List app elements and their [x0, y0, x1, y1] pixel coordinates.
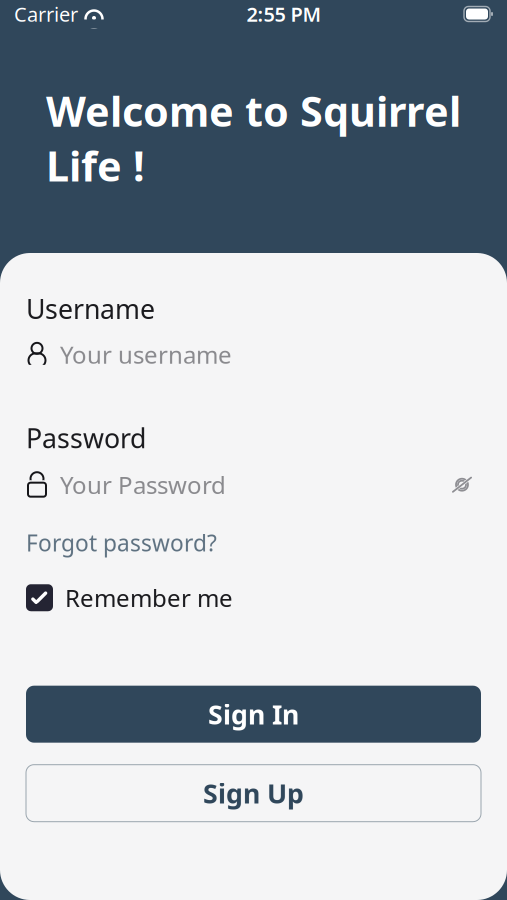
staticText: 2:55 PM — [246, 1, 321, 27]
button[interactable]: Remember me — [26, 582, 233, 614]
staticText: Your username — [60, 338, 232, 370]
button[interactable]: Sign Up — [26, 765, 481, 822]
staticText: Sign In — [208, 696, 299, 732]
staticText: Password — [26, 420, 146, 456]
button[interactable]: Sign In — [26, 686, 481, 743]
staticText: Welcome to Squirrel Life ! — [46, 83, 461, 193]
staticText: Sign Up — [203, 775, 304, 811]
staticText: Your Password — [60, 469, 226, 501]
staticText: Remember me — [65, 582, 233, 614]
staticText: Username — [26, 291, 155, 326]
staticText: Carrier — [14, 1, 78, 27]
button[interactable]: Show password — [443, 468, 481, 502]
button[interactable]: Forgot password? — [26, 528, 217, 558]
staticText: Forgot password? — [26, 528, 217, 558]
